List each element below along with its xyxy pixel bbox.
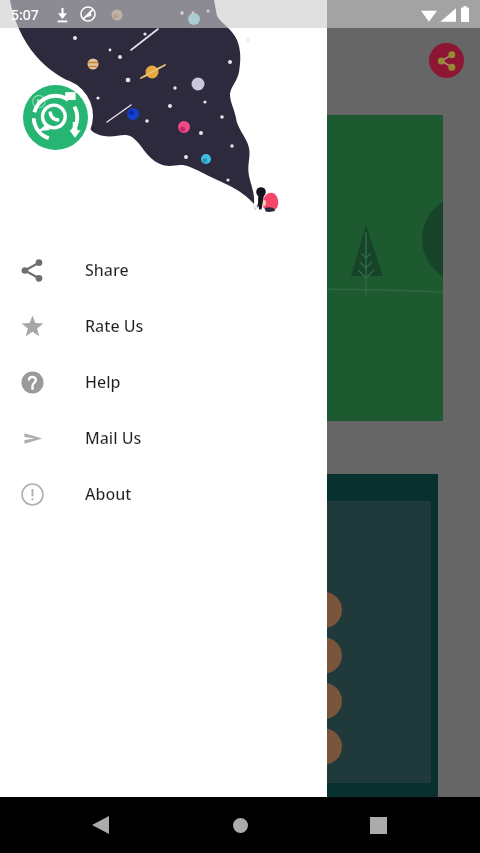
button[interactable] — [100, 474, 438, 799]
button[interactable]: Share — [429, 43, 464, 78]
button[interactable]: Recent apps — [356, 803, 400, 847]
button[interactable]: Home — [218, 803, 262, 847]
button[interactable]: Back — [78, 803, 122, 847]
button[interactable]: About — [0, 466, 327, 522]
staticText: 5:07 — [11, 5, 39, 24]
staticText: Mail Us — [85, 427, 142, 449]
staticText: About — [85, 483, 132, 505]
button[interactable] — [100, 115, 443, 421]
staticText: Rate Us — [85, 315, 144, 337]
button[interactable]: Share — [0, 242, 327, 298]
staticText: Help — [85, 371, 121, 393]
button[interactable]: Help — [0, 354, 327, 410]
staticText: Share — [85, 259, 129, 281]
button[interactable]: Rate Us — [0, 298, 327, 354]
button[interactable]: Mail Us — [0, 410, 327, 466]
